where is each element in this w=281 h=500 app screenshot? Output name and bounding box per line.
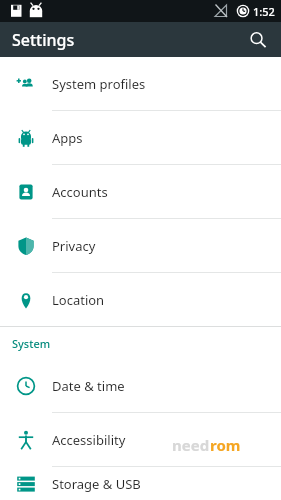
button[interactable]: Accessibility bbox=[0, 413, 281, 466]
staticText: Accessibility bbox=[52, 431, 126, 449]
button[interactable]: Search bbox=[243, 25, 273, 55]
staticText: Location bbox=[52, 291, 105, 309]
staticText: need bbox=[172, 435, 210, 455]
button[interactable]: Date & time bbox=[0, 359, 281, 412]
button[interactable]: System profiles bbox=[0, 57, 281, 110]
button[interactable]: Privacy bbox=[0, 219, 281, 272]
button[interactable]: Storage & USB bbox=[0, 467, 281, 500]
staticText: rom bbox=[210, 435, 241, 455]
staticText: Settings bbox=[12, 29, 75, 51]
staticText: System bbox=[12, 336, 51, 351]
staticText: Date & time bbox=[52, 377, 125, 395]
staticText: 1:52 bbox=[253, 4, 275, 19]
staticText: Privacy bbox=[52, 237, 96, 255]
staticText: Accounts bbox=[52, 183, 108, 201]
button[interactable]: Location bbox=[0, 273, 281, 326]
staticText: System profiles bbox=[52, 75, 146, 93]
staticText: Apps bbox=[52, 129, 83, 147]
button[interactable]: Apps bbox=[0, 111, 281, 164]
staticText: Storage & USB bbox=[52, 475, 141, 493]
button[interactable]: Accounts bbox=[0, 165, 281, 218]
